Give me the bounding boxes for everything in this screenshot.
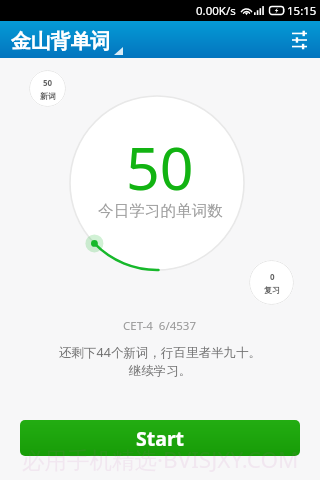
staticText: 必用手机精选·BVISJXY.COM	[22, 444, 299, 475]
staticText: 50	[43, 77, 53, 88]
staticText: 复习	[264, 285, 280, 295]
button[interactable]: 0	[249, 260, 294, 305]
button[interactable]: Start	[20, 420, 300, 456]
button[interactable]: 金山背单词	[11, 21, 123, 58]
staticText: 还剩下44个新词，行百里者半九十。 继续学习。	[59, 344, 261, 378]
staticText: 15:15	[287, 3, 317, 19]
button[interactable]: Settings	[284, 25, 314, 55]
staticText: 0	[270, 271, 275, 282]
staticText: 0.00K/s	[196, 3, 236, 19]
staticText: Start	[136, 425, 185, 452]
staticText: 金山背单词	[11, 29, 110, 54]
staticText: 50	[126, 127, 194, 207]
button[interactable]: 50	[29, 70, 66, 107]
staticText: 今日学习的单词数	[98, 201, 223, 221]
staticText: 新词	[40, 91, 56, 101]
staticText: CET-4 6/4537	[123, 318, 197, 334]
